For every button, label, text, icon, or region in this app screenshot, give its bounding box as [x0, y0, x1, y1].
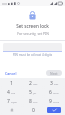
staticText: 6	[49, 89, 52, 96]
staticText: TUV	[33, 101, 38, 104]
staticText: JKL	[33, 92, 37, 95]
button[interactable]: 5	[23, 88, 43, 96]
staticText: DEF	[54, 83, 59, 86]
button[interactable]: 7	[1, 97, 22, 105]
button[interactable]: 1	[1, 79, 22, 87]
staticText: PIN must be at least 4 digits	[4, 53, 61, 57]
staticText: 1	[10, 80, 13, 87]
button[interactable]: Next	[46, 70, 62, 76]
button[interactable]: 3	[44, 79, 64, 87]
staticText: 7	[7, 98, 10, 105]
staticText: 3	[50, 80, 53, 87]
button[interactable]: Enter	[47, 107, 61, 113]
staticText: For security, set PIN	[17, 31, 49, 36]
button[interactable]: 4	[1, 88, 22, 96]
button[interactable]: 6	[44, 88, 64, 96]
staticText: 5	[29, 89, 32, 96]
staticText: 2	[29, 80, 32, 87]
staticText: GHI	[11, 92, 16, 95]
button[interactable]: 9	[44, 97, 64, 105]
staticText: 9	[49, 98, 52, 105]
staticText: 0	[32, 107, 35, 114]
button[interactable]: Symbols	[1, 106, 22, 114]
staticText: Next	[50, 71, 58, 76]
staticText: Set screen lock	[16, 23, 49, 29]
staticText: 4	[7, 89, 10, 96]
staticText: Cancel	[5, 71, 17, 76]
button[interactable]: Cancel	[3, 70, 19, 77]
staticText: ABC	[33, 83, 38, 86]
button[interactable]: 8	[23, 97, 43, 105]
staticText: PQRS	[11, 101, 17, 104]
staticText: MNO	[53, 92, 59, 95]
staticText: 8	[29, 98, 32, 105]
button[interactable]: 2	[23, 79, 43, 87]
button[interactable]	[3, 43, 62, 52]
button[interactable]: 0	[23, 106, 43, 114]
staticText: WXYZ	[53, 101, 60, 104]
